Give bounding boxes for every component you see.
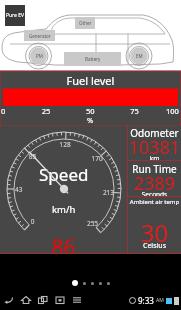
staticText: AM	[156, 297, 164, 304]
staticText: km	[128, 154, 181, 163]
button[interactable]: Home	[20, 294, 32, 306]
button[interactable]: Menu	[71, 294, 83, 306]
button[interactable]: Back	[3, 294, 15, 306]
button[interactable]	[0, 71, 181, 126]
button[interactable]: Run Time	[128, 161, 181, 196]
button[interactable]: Recents	[37, 294, 49, 306]
button[interactable]: Ambient air temp	[128, 197, 181, 253]
button[interactable]: Screenshot	[54, 294, 66, 306]
staticText: Ambient air temp	[128, 198, 181, 206]
staticText: Run Time	[128, 162, 181, 176]
staticText: Pure EV	[6, 12, 24, 19]
staticText: Celsius	[128, 241, 181, 251]
button[interactable]: Odometer	[128, 126, 181, 160]
staticText: Other	[79, 20, 92, 26]
staticText: PM	[36, 53, 43, 59]
staticText: 2389	[128, 171, 181, 196]
staticText: Odometer	[128, 126, 181, 140]
staticText: Seconds	[128, 190, 181, 199]
staticText: 30	[128, 216, 181, 249]
staticText: 9:33	[138, 295, 154, 306]
staticText: Generator	[29, 33, 51, 39]
staticText: EM	[136, 53, 143, 59]
staticText: Battery	[85, 56, 101, 62]
staticText: 10381	[128, 135, 181, 160]
